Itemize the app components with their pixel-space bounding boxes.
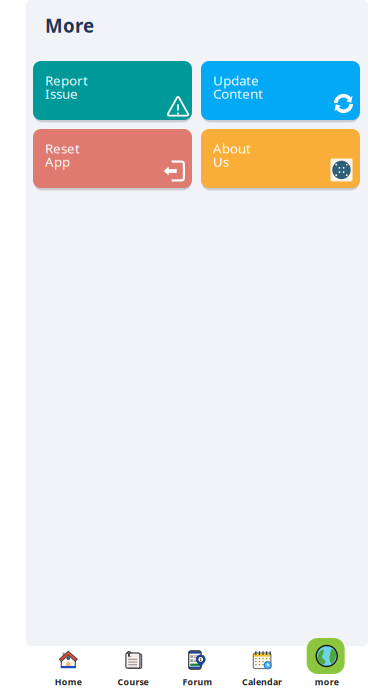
button[interactable]: Update (201, 61, 360, 120)
staticText: Issue (45, 85, 78, 102)
staticText: More (45, 13, 94, 38)
button[interactable]: Home (36, 646, 101, 694)
button[interactable]: Reset (33, 129, 192, 188)
staticText: App (45, 153, 70, 170)
staticText: Forum (182, 676, 212, 688)
button[interactable]: Calendar (230, 646, 294, 694)
staticText: Home (55, 676, 82, 688)
button[interactable]: more (294, 646, 359, 694)
staticText: Course (117, 676, 148, 688)
staticText: Reset (45, 139, 80, 157)
button[interactable]: Report (33, 61, 192, 120)
staticText: Report (45, 71, 88, 89)
staticText: Content (213, 85, 263, 102)
button[interactable]: Forum (165, 646, 230, 694)
staticText: Us (213, 153, 229, 170)
staticText: About (213, 139, 251, 157)
button[interactable]: About (201, 129, 360, 188)
staticText: Update (213, 71, 259, 89)
staticText: Calendar (242, 676, 282, 688)
button[interactable]: Course (101, 646, 165, 694)
staticText: more (315, 676, 339, 688)
